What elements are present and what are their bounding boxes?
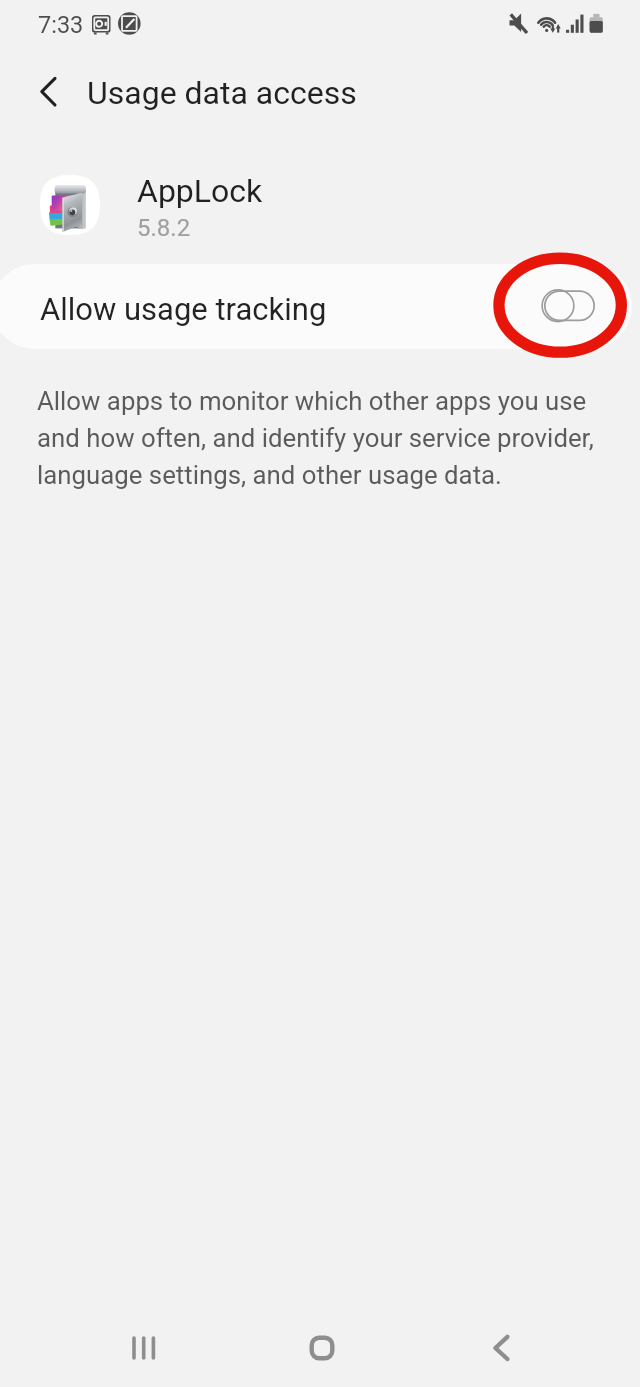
- button[interactable]: Recent apps: [96, 1300, 192, 1387]
- staticText: 7:33: [38, 11, 84, 39]
- button[interactable]: Home: [274, 1300, 370, 1387]
- staticText: Usage data access: [87, 74, 357, 112]
- button[interactable]: Back: [453, 1300, 549, 1387]
- staticText: AppLock: [137, 172, 263, 210]
- staticText: Allow apps to monitor which other apps y…: [37, 380, 619, 491]
- staticText: 5.8.2: [137, 214, 191, 242]
- staticText: Allow usage tracking: [40, 291, 327, 327]
- button[interactable]: Navigate up: [20, 63, 76, 119]
- button[interactable]: Allow usage tracking: [0, 264, 632, 349]
